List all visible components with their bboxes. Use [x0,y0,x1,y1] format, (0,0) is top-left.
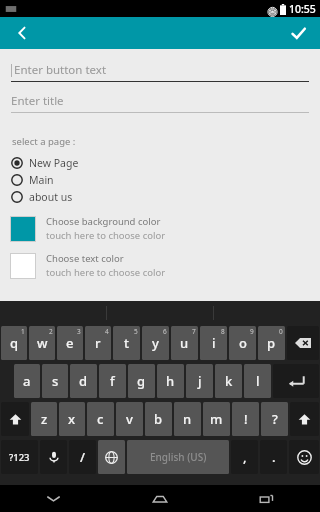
staticText: 3 [77,327,81,336]
button[interactable]: x [59,402,85,436]
button[interactable]: ! [232,402,259,436]
staticText: 7 [192,327,196,336]
staticText: l [256,372,260,390]
staticText: 0 [279,327,283,336]
button[interactable]: . [260,440,287,474]
staticText: f [110,372,115,390]
staticText: Main [29,173,54,187]
staticText: a [23,372,31,390]
button[interactable]: 9 [229,326,256,360]
staticText: ? [272,410,278,428]
staticText: t [124,334,129,352]
button[interactable]: about us [0,188,320,205]
button[interactable]: Shift [290,402,319,436]
button[interactable]: ? [261,402,288,436]
staticText: e [66,334,74,352]
staticText: , [243,448,247,466]
button[interactable]: Backspace [287,326,319,360]
button[interactable]: Enter [273,364,319,398]
staticText: 8 [221,327,225,336]
staticText: 2 [49,327,53,336]
button[interactable]: Choose background color [0,215,320,242]
staticText: m [210,410,223,428]
button[interactable]: d [70,364,97,398]
staticText: 10:55 [289,2,316,16]
button[interactable]: h [157,364,184,398]
staticText: 6 [163,327,167,336]
button[interactable]: , [231,440,258,474]
button[interactable]: v [116,402,143,436]
button[interactable]: Recent apps [213,485,320,512]
button[interactable]: Back [0,485,106,512]
button[interactable]: English (US) [127,440,229,474]
button[interactable]: Back [6,17,38,49]
staticText: touch here to choose color [46,229,166,242]
button[interactable]: 4 [85,326,111,360]
staticText: 9 [250,327,254,336]
staticText: v [126,410,133,428]
staticText: o [239,334,247,352]
staticText: z [41,410,48,428]
staticText: Choose background color [46,215,161,228]
button[interactable]: 0 [258,326,285,360]
staticText: w [37,334,48,352]
staticText: Enter title [11,93,64,109]
staticText: h [166,372,175,390]
staticText: / [80,448,86,466]
staticText: r [95,334,101,352]
button[interactable]: Main [0,171,320,188]
staticText: j [198,372,202,390]
button[interactable]: Home [106,485,213,512]
button[interactable]: g [128,364,155,398]
button[interactable]: Enter title [11,90,309,121]
button[interactable]: New Page [0,154,320,171]
button[interactable]: Choose text color [0,252,320,279]
staticText: d [79,372,88,390]
staticText: k [225,372,233,390]
staticText: English (US) [150,450,207,464]
button[interactable]: f [99,364,126,398]
button[interactable]: Voice input [40,440,67,474]
staticText: y [152,334,159,352]
button[interactable]: s [42,364,68,398]
button[interactable]: Shift [1,402,29,436]
button[interactable]: 6 [142,326,169,360]
button[interactable]: b [145,402,172,436]
button[interactable]: Change language [98,440,125,474]
staticText: Choose text color [46,252,124,265]
button[interactable]: a [14,364,40,398]
button[interactable]: / [69,440,96,474]
staticText: ?123 [9,451,30,464]
staticText: b [154,410,163,428]
button[interactable]: 5 [113,326,140,360]
button[interactable]: m [203,402,230,436]
button[interactable]: j [186,364,213,398]
button[interactable]: 1 [1,326,27,360]
button[interactable]: c [87,402,114,436]
staticText: g [137,372,146,390]
button[interactable]: 7 [171,326,198,360]
button[interactable]: 3 [57,326,83,360]
button[interactable]: z [31,402,57,436]
button[interactable]: l [244,364,271,398]
staticText: Enter button text [14,62,107,78]
staticText: q [10,334,19,352]
staticText: c [97,410,104,428]
staticText: n [183,410,192,428]
staticText: about us [29,190,73,204]
button[interactable]: n [174,402,201,436]
staticText: touch here to choose color [46,266,166,279]
button[interactable]: Enter button text [11,59,309,90]
button[interactable]: Emoji [289,440,319,474]
button[interactable]: k [215,364,242,398]
staticText: 5 [134,327,138,336]
button[interactable]: Confirm [282,17,314,49]
button[interactable]: 8 [200,326,227,360]
staticText: New Page [29,156,79,170]
button[interactable]: 2 [29,326,55,360]
button[interactable]: ?123 [1,440,38,474]
staticText: p [267,334,276,352]
